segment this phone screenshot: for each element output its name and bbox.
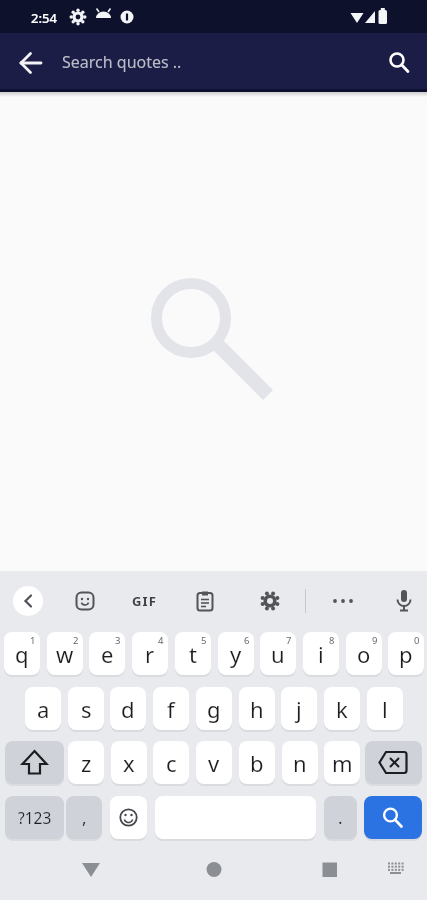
staticText: x [123,748,135,778]
button[interactable]: f [153,687,189,730]
button[interactable]: z [68,741,104,784]
staticText: b [250,748,264,778]
button[interactable]: x [111,741,147,784]
button[interactable]: b [239,741,275,784]
staticText: 8 [329,634,335,647]
staticText: r [145,639,155,669]
staticText: j [296,694,302,724]
button[interactable]: y [218,632,254,675]
staticText: 6 [244,634,250,647]
button[interactable] [379,43,415,79]
button[interactable]: w [47,632,83,675]
button[interactable]: ?123 [5,796,64,839]
button[interactable]: t [175,632,211,675]
staticText: Search quotes .. [62,51,182,73]
staticText: 0 [414,634,420,647]
button[interactable]: j [281,687,317,730]
staticText: 4 [158,634,164,647]
staticText: t [189,639,197,669]
button[interactable]: c [153,741,189,784]
button[interactable]: i [303,632,339,675]
button[interactable] [259,590,281,612]
button[interactable] [7,39,55,87]
button[interactable] [365,741,422,784]
button[interactable]: u [260,632,296,675]
staticText: 7 [286,634,292,647]
button[interactable]: m [324,741,360,784]
button[interactable] [190,846,238,894]
staticText: h [250,694,264,724]
button[interactable]: l [367,687,403,730]
button[interactable]: GIF [129,592,161,610]
staticText: i [318,639,324,669]
staticText: y [230,639,242,669]
staticText: 2 [73,634,79,647]
staticText: q [15,639,29,669]
button[interactable] [194,590,216,612]
button[interactable] [364,796,422,839]
staticText: g [207,694,221,724]
staticText: 5 [201,634,207,647]
button[interactable]: a [25,687,61,730]
staticText: , [82,806,87,829]
button[interactable]: d [110,687,146,730]
button[interactable]: s [68,687,104,730]
staticText: o [357,639,371,669]
staticText: z [81,748,92,778]
button[interactable]: Search quotes .. [62,48,322,76]
staticText: e [101,639,114,669]
staticText: 2:54 [31,9,57,27]
staticText: n [293,748,307,778]
staticText: m [332,748,353,778]
button[interactable] [67,846,115,894]
staticText: GIF [132,592,158,610]
button[interactable]: q [4,632,40,675]
button[interactable]: o [346,632,382,675]
staticText: d [121,694,135,724]
staticText: s [81,694,92,724]
staticText: 1 [30,634,36,647]
staticText: 3 [115,634,121,647]
staticText: f [167,694,175,724]
button[interactable]: v [196,741,232,784]
button[interactable]: , [66,796,102,839]
staticText: c [166,748,177,778]
button[interactable]: n [282,741,318,784]
staticText: l [382,694,388,724]
staticText: . [338,806,343,829]
staticText: ?123 [18,807,52,828]
button[interactable] [74,590,96,612]
button[interactable] [306,846,354,894]
staticText: v [208,748,220,778]
staticText: k [336,694,348,724]
button[interactable]: p [388,632,424,675]
staticText: a [37,694,50,724]
button[interactable] [392,588,416,614]
button[interactable]: e [89,632,125,675]
staticText: w [56,639,74,669]
button[interactable] [110,796,147,839]
button[interactable] [5,741,64,784]
staticText: u [271,639,285,669]
button[interactable] [331,589,355,613]
button[interactable]: r [132,632,168,675]
button[interactable]: k [324,687,360,730]
button[interactable]: . [324,796,357,839]
staticText: p [399,639,413,669]
button[interactable]: h [239,687,275,730]
button[interactable] [13,586,43,616]
staticText: 9 [372,634,378,647]
button[interactable]: g [196,687,232,730]
